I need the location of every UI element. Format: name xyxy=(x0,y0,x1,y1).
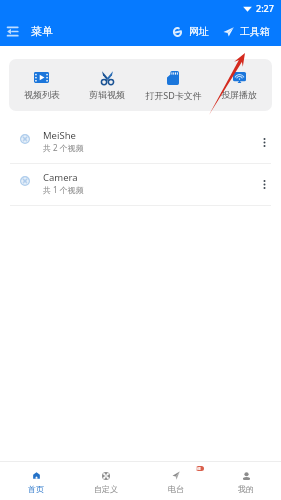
button[interactable]: 我的 xyxy=(211,462,281,500)
staticText: 自定义 xyxy=(94,484,118,494)
button[interactable]: More options xyxy=(253,131,275,153)
staticText: 打开SD卡文件 xyxy=(145,89,202,101)
button[interactable]: MeiShe xyxy=(0,122,281,163)
button[interactable]: 网址 xyxy=(168,22,214,41)
button[interactable]: 工具箱 xyxy=(218,22,281,41)
button[interactable]: 电台 xyxy=(141,462,211,500)
staticText: 首页 xyxy=(28,484,44,494)
staticText: 剪辑视频 xyxy=(89,89,125,100)
button[interactable]: 投屏播放 xyxy=(206,59,272,111)
staticText: 共 2 个视频 xyxy=(43,142,84,153)
button[interactable]: Camera xyxy=(0,164,281,205)
button[interactable]: 首页 xyxy=(0,462,71,500)
staticText: 2:27 xyxy=(256,2,274,14)
staticText: 网址 xyxy=(189,25,209,38)
staticText: 投屏播放 xyxy=(221,89,257,100)
button[interactable]: 视频列表 xyxy=(9,59,74,111)
staticText: 我的 xyxy=(238,484,254,494)
staticText: 电台 xyxy=(168,484,184,494)
button[interactable]: 打开SD卡文件 xyxy=(140,59,206,111)
button[interactable]: More options xyxy=(253,173,275,195)
staticText: NEW xyxy=(196,466,204,471)
staticText: 工具箱 xyxy=(240,25,270,38)
staticText: Camera xyxy=(43,171,78,184)
staticText: MeiShe xyxy=(43,129,76,142)
button[interactable]: 菜单 xyxy=(0,21,61,41)
staticText: 共 1 个视频 xyxy=(43,184,84,195)
button[interactable]: 剪辑视频 xyxy=(74,59,140,111)
staticText: 视频列表 xyxy=(24,89,60,100)
button[interactable]: 自定义 xyxy=(71,462,141,500)
staticText: 菜单 xyxy=(31,24,53,38)
